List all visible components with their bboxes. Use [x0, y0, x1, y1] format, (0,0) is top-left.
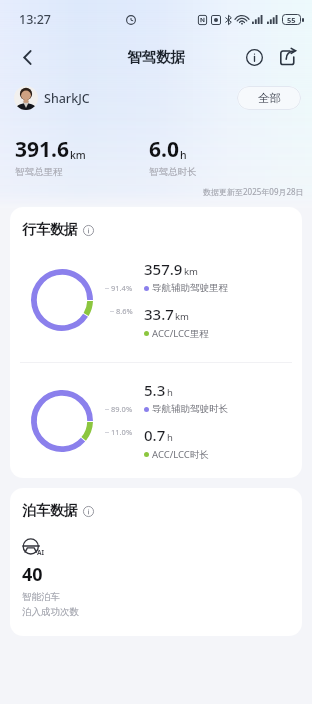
staticText: 6.0	[149, 135, 179, 164]
staticText: 55	[287, 15, 296, 25]
staticText: 泊车数据	[22, 502, 78, 520]
button[interactable]: Share	[272, 41, 304, 73]
staticText: 8.6%	[116, 306, 133, 316]
staticText: 全部	[258, 91, 281, 105]
staticText: 行车数据	[22, 221, 78, 239]
staticText: 0.7	[144, 425, 166, 445]
staticText: h	[167, 386, 173, 399]
staticText: ACC/LCC里程	[152, 327, 209, 340]
button[interactable]: Back	[10, 40, 44, 74]
staticText: km	[175, 310, 189, 323]
staticText: 数据更新至2025年09月28日	[203, 186, 304, 197]
staticText: h	[180, 148, 187, 162]
staticText: 391.6	[15, 135, 69, 164]
staticText: 89.0%	[111, 404, 133, 414]
staticText: 导航辅助驾驶里程	[152, 282, 228, 294]
staticText: km	[184, 265, 198, 278]
staticText: 智驾总时长	[149, 166, 197, 178]
staticText: 91.4%	[111, 283, 133, 293]
staticText: km	[70, 148, 86, 162]
staticText: SharkJC	[44, 90, 90, 107]
staticText: 13:27	[19, 11, 52, 28]
staticText: 导航辅助驾驶时长	[152, 403, 228, 415]
staticText: 智驾数据	[127, 48, 185, 66]
staticText: 智驾总里程	[15, 166, 63, 178]
staticText: 智能泊车	[22, 591, 60, 603]
staticText: 33.7	[144, 304, 174, 324]
staticText: 泊入成功次数	[22, 606, 79, 618]
button[interactable]: Info	[238, 41, 270, 73]
staticText: 357.9	[144, 259, 183, 279]
staticText: 11.0%	[111, 427, 133, 437]
staticText: h	[167, 431, 173, 444]
staticText: ACC/LCC时长	[152, 448, 209, 461]
staticText: AI	[37, 548, 45, 557]
button[interactable]: 全部	[237, 86, 301, 110]
staticText: 40	[22, 562, 43, 587]
staticText: 5.3	[144, 380, 166, 400]
